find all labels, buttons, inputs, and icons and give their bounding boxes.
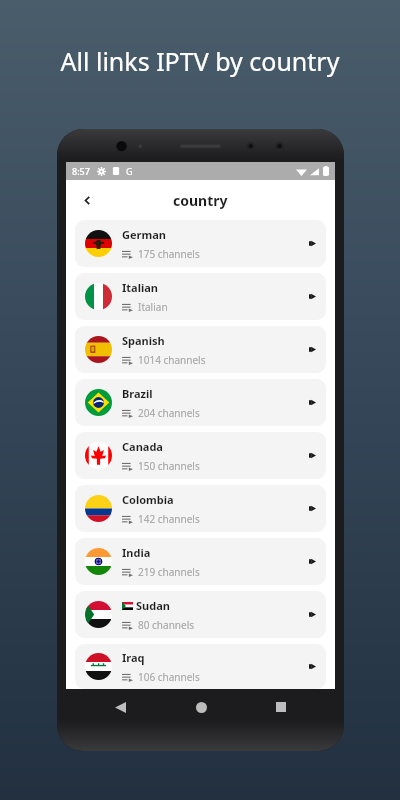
button[interactable]: Back: [74, 187, 100, 213]
button[interactable]: Back: [103, 690, 137, 724]
staticText: 1014 channels: [138, 353, 206, 367]
staticText: Sudan: [136, 598, 170, 613]
staticText: Brazil: [122, 386, 153, 401]
button[interactable]: German: [75, 220, 326, 267]
staticText: Canada: [122, 439, 163, 454]
staticText: 219 channels: [138, 565, 200, 579]
staticText: 204 channels: [138, 406, 200, 420]
staticText: 175 channels: [138, 247, 200, 261]
button[interactable]: Colombia: [75, 485, 326, 532]
staticText: All links IPTV by country: [0, 44, 400, 78]
staticText: 150 channels: [138, 459, 200, 473]
staticText: G: [126, 165, 133, 177]
button[interactable]: Iraq: [75, 644, 326, 689]
staticText: Spanish: [122, 333, 165, 348]
button[interactable]: Recents: [264, 690, 298, 724]
staticText: Italian: [122, 280, 158, 295]
button[interactable]: India: [75, 538, 326, 585]
button[interactable]: Brazil: [75, 379, 326, 426]
button[interactable]: Sudan: [75, 591, 326, 638]
staticText: German: [122, 227, 166, 242]
button[interactable]: Home: [184, 690, 218, 724]
staticText: 142 channels: [138, 512, 200, 526]
button[interactable]: Italian: [75, 273, 326, 320]
button[interactable]: Canada: [75, 432, 326, 479]
staticText: 8:57: [72, 165, 90, 177]
staticText: 80 channels: [138, 618, 194, 632]
staticText: Colombia: [122, 492, 174, 507]
staticText: country: [173, 191, 228, 210]
staticText: Italian: [138, 300, 168, 314]
button[interactable]: Spanish: [75, 326, 326, 373]
staticText: 106 channels: [138, 670, 200, 684]
staticText: India: [122, 545, 151, 560]
staticText: Iraq: [122, 650, 145, 665]
